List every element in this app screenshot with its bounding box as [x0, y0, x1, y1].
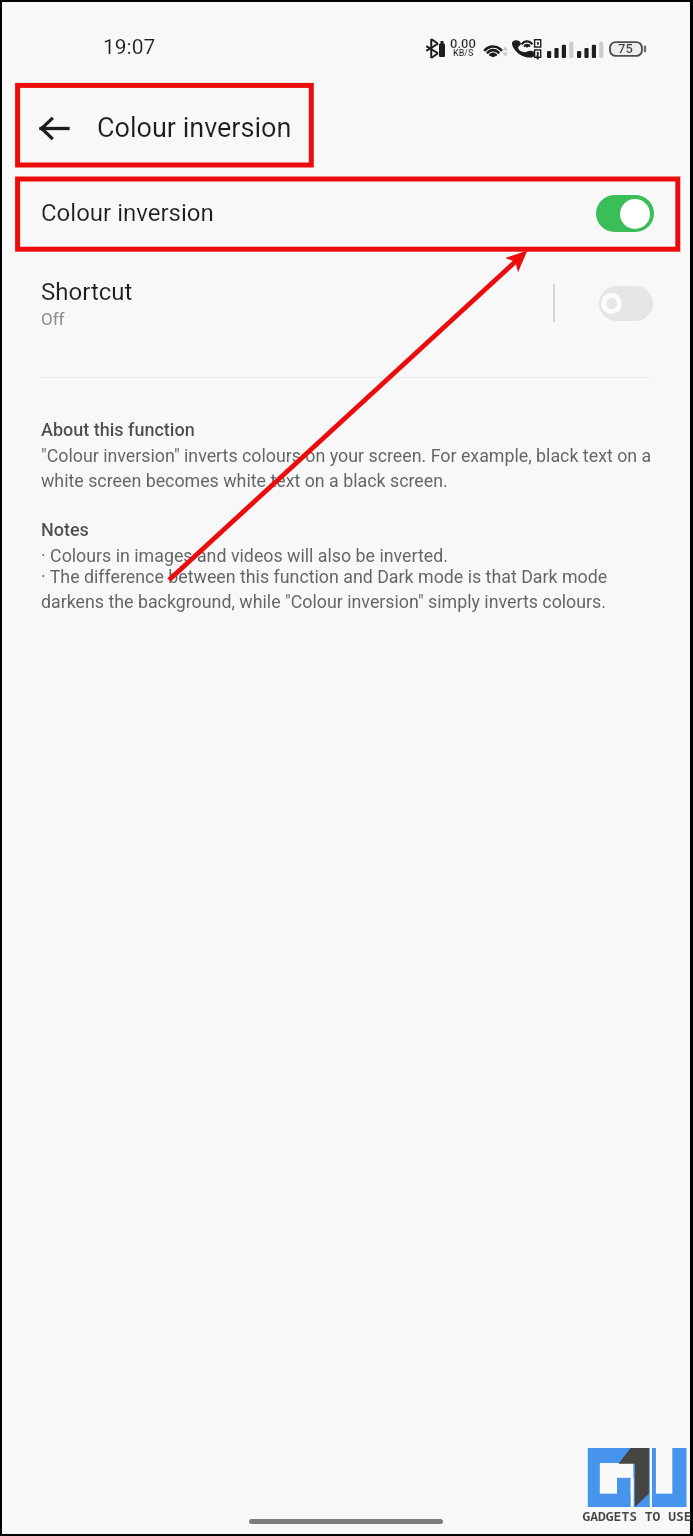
- staticText: Colour inversion: [97, 112, 292, 144]
- staticText: · The difference between this function a…: [41, 566, 665, 612]
- staticText: · Colours in images and videos will also…: [41, 545, 448, 566]
- staticText: 0.00: [450, 36, 476, 51]
- staticText: About this function: [41, 419, 195, 440]
- button[interactable]: Colour inversion: [2, 177, 690, 249]
- staticText: Shortcut: [41, 278, 133, 306]
- staticText: Colour inversion: [41, 199, 214, 227]
- button[interactable]: Back: [30, 104, 78, 152]
- staticText: Off: [41, 309, 65, 329]
- staticText: KB/S: [453, 48, 474, 59]
- button[interactable]: Colour inversion on: [596, 195, 654, 232]
- button[interactable]: Shortcut off: [599, 286, 653, 321]
- button[interactable]: Shortcut: [2, 261, 690, 345]
- staticText: Notes: [41, 519, 89, 540]
- staticText: 75: [618, 41, 633, 56]
- staticText: GADGETS TO USE: [582, 1507, 692, 1525]
- staticText: "Colour inversion" inverts colours on yo…: [41, 445, 665, 491]
- button[interactable]: Back: [2, 88, 690, 168]
- staticText: 19:07: [103, 35, 156, 60]
